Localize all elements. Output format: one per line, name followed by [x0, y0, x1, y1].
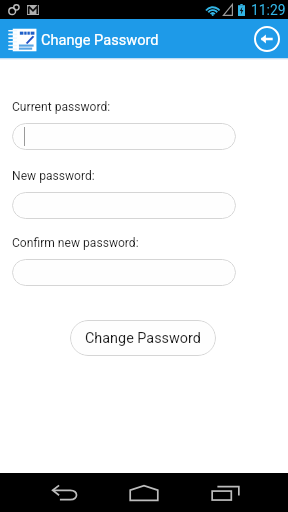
- staticText: New password:: [12, 169, 95, 183]
- button[interactable]: Recents: [201, 473, 249, 512]
- button[interactable]: Back: [253, 25, 281, 53]
- staticText: Confirm new password:: [12, 236, 139, 250]
- button[interactable]: Back: [40, 473, 88, 512]
- staticText: Change Password: [85, 330, 201, 347]
- button[interactable]: Change Password: [70, 320, 216, 356]
- staticText: 11:29: [251, 2, 286, 18]
- staticText: Current password:: [12, 100, 111, 114]
- staticText: Change Password: [41, 31, 159, 48]
- button[interactable]: [12, 259, 236, 286]
- button[interactable]: [12, 192, 236, 219]
- button[interactable]: [12, 123, 236, 150]
- button[interactable]: Home: [120, 473, 168, 512]
